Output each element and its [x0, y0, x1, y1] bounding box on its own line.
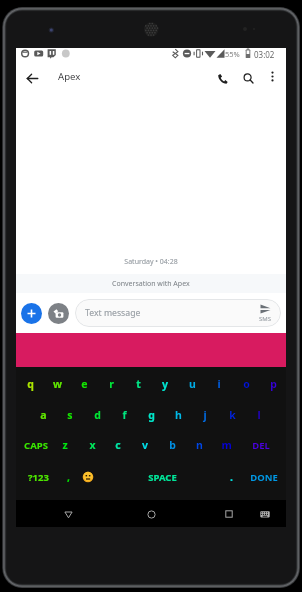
- staticText: n: [196, 438, 203, 452]
- staticText: w: [53, 377, 62, 391]
- staticText: DONE: [250, 471, 278, 484]
- button[interactable]: ,: [48, 468, 88, 486]
- button[interactable]: n: [179, 436, 219, 454]
- staticText: q: [27, 377, 34, 391]
- button[interactable]: u: [172, 375, 212, 393]
- button[interactable]: t: [118, 375, 158, 393]
- button[interactable]: p: [253, 375, 293, 393]
- button[interactable]: w: [37, 375, 77, 393]
- staticText: Saturday • 04:28: [16, 257, 286, 267]
- button[interactable]: Switch keyboard: [255, 504, 275, 524]
- button[interactable]: s: [50, 406, 90, 424]
- button[interactable]: q: [10, 375, 50, 393]
- button[interactable]: m: [206, 436, 246, 454]
- staticText: k: [229, 408, 236, 422]
- button[interactable]: h: [158, 406, 198, 424]
- staticText: SMS: [259, 315, 272, 323]
- button[interactable]: d: [77, 406, 117, 424]
- button[interactable]: Home: [139, 502, 163, 526]
- staticText: m: [221, 438, 232, 452]
- staticText: 03:02: [254, 49, 275, 60]
- staticText: e: [81, 377, 88, 391]
- staticText: h: [175, 408, 182, 422]
- staticText: r: [109, 377, 114, 391]
- button[interactable]: .: [211, 468, 251, 486]
- staticText: f: [122, 408, 127, 422]
- button[interactable]: i: [199, 375, 239, 393]
- staticText: Apex: [58, 70, 81, 83]
- button[interactable]: g: [131, 406, 171, 424]
- staticText: Conversation with Apex: [112, 279, 190, 289]
- staticText: a: [40, 408, 47, 422]
- staticText: v: [142, 438, 148, 452]
- staticText: Text message: [85, 307, 141, 319]
- staticText: b: [169, 438, 176, 452]
- staticText: 55%: [225, 49, 240, 59]
- button[interactable]: Emoji: [79, 468, 97, 486]
- staticText: .: [230, 470, 233, 484]
- staticText: y: [162, 377, 168, 391]
- staticText: CAPS: [24, 439, 48, 452]
- button[interactable]: Recent apps: [217, 502, 241, 526]
- button[interactable]: a: [23, 406, 63, 424]
- staticText: DEL: [252, 439, 270, 452]
- button[interactable]: x: [72, 436, 112, 454]
- button[interactable]: Camera: [48, 303, 69, 324]
- button[interactable]: Call: [210, 66, 234, 90]
- button[interactable]: z: [45, 436, 85, 454]
- button[interactable]: Attach: [21, 303, 42, 324]
- button[interactable]: o: [226, 375, 266, 393]
- button[interactable]: f: [104, 406, 144, 424]
- staticText: s: [67, 408, 73, 422]
- button[interactable]: k: [212, 406, 252, 424]
- button[interactable]: Text message: [75, 299, 281, 327]
- staticText: g: [148, 408, 155, 422]
- button[interactable]: SPACE: [142, 468, 182, 486]
- button[interactable]: j: [185, 406, 225, 424]
- staticText: u: [189, 377, 196, 391]
- button[interactable]: r: [91, 375, 131, 393]
- staticText: ?123: [28, 471, 49, 484]
- button[interactable]: DONE: [244, 468, 284, 486]
- staticText: ,: [67, 470, 70, 484]
- staticText: t: [136, 377, 141, 391]
- button[interactable]: c: [98, 436, 138, 454]
- button[interactable]: l: [239, 406, 279, 424]
- staticText: p: [270, 377, 277, 391]
- button[interactable]: Back: [56, 502, 80, 526]
- button[interactable]: v: [125, 436, 165, 454]
- staticText: SPACE: [148, 471, 177, 484]
- button[interactable]: CAPS: [16, 436, 56, 454]
- staticText: l: [257, 408, 261, 422]
- staticText: x: [89, 438, 96, 452]
- button[interactable]: y: [145, 375, 185, 393]
- button[interactable]: DEL: [241, 436, 281, 454]
- staticText: d: [94, 408, 101, 422]
- staticText: j: [203, 408, 207, 422]
- staticText: i: [217, 377, 221, 391]
- staticText: z: [62, 438, 68, 452]
- button[interactable]: Search: [236, 66, 260, 90]
- staticText: c: [115, 438, 121, 452]
- button[interactable]: More options: [262, 66, 282, 86]
- button[interactable]: Back: [20, 66, 44, 90]
- staticText: o: [243, 377, 250, 391]
- button[interactable]: e: [64, 375, 104, 393]
- button[interactable]: ?123: [18, 468, 58, 486]
- button[interactable]: b: [152, 436, 192, 454]
